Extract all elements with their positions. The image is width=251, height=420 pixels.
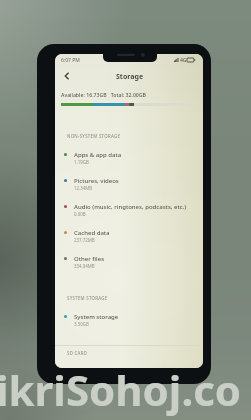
staticText: 4G (180, 57, 187, 64)
button[interactable]: Other files (55, 251, 203, 273)
button[interactable]: Pictures, videos (55, 173, 203, 195)
button[interactable]: Apps & app data (55, 147, 203, 169)
staticText: Other files (74, 255, 105, 263)
staticText: NON-SYSTEM STORAGE (67, 133, 121, 139)
staticText: Storage (116, 72, 144, 82)
staticText: Audio (music, ringtones, podcasts, etc.) (74, 203, 187, 211)
staticText: 237.72MB (74, 237, 95, 243)
button[interactable]: Back (59, 68, 74, 83)
staticText: SD CARD (67, 350, 88, 356)
button[interactable]: Audio (music, ringtones, podcasts, etc.) (55, 199, 203, 221)
staticText: SYSTEM STORAGE (67, 295, 108, 301)
staticText: System storage (74, 313, 119, 321)
button[interactable]: Cached data (55, 225, 203, 247)
staticText: 3.50GB (74, 321, 89, 327)
staticText: 6:07 PM (61, 57, 80, 64)
staticText: 12.34MB (74, 185, 93, 191)
staticText: 1.19GB (74, 159, 89, 165)
staticText: 334.04MB (74, 263, 95, 269)
button[interactable]: System storage (55, 309, 203, 331)
staticText: 0.00B (74, 211, 86, 217)
staticText: Pictures, videos (74, 177, 119, 185)
staticText: Apps & app data (74, 151, 122, 159)
staticText: Available: 16.73GB Total: 32.00GB (61, 91, 146, 98)
staticText: Cached data (74, 229, 110, 237)
staticText: ikriSohoj.co (0, 361, 242, 418)
